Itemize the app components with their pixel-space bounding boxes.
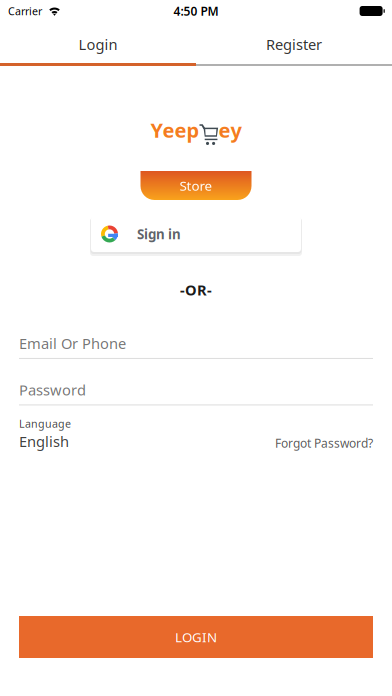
button[interactable]: Sign in <box>89 215 303 255</box>
staticText: Yeep <box>150 117 199 143</box>
button[interactable]: Forgot Password? <box>275 435 373 451</box>
staticText: 4:50 PM <box>173 3 218 19</box>
staticText: -OR- <box>180 280 212 299</box>
staticText: English <box>19 432 69 451</box>
staticText: Password <box>19 380 86 399</box>
staticText: Sign in <box>137 225 181 243</box>
staticText: LOGIN <box>175 628 217 646</box>
staticText: ey <box>218 117 241 143</box>
staticText: Email Or Phone <box>19 333 126 353</box>
staticText: Forgot Password? <box>275 435 373 451</box>
staticText: Register <box>266 34 322 54</box>
staticText: Carrier <box>8 4 42 18</box>
button[interactable]: Login <box>0 22 196 66</box>
button[interactable]: Register <box>196 22 392 66</box>
button[interactable]: Store <box>140 171 251 200</box>
staticText: Login <box>78 34 117 54</box>
button[interactable]: LOGIN <box>19 616 373 658</box>
staticText: Store <box>179 177 212 194</box>
button[interactable]: Language <box>19 416 71 451</box>
staticText: Language <box>19 416 71 431</box>
